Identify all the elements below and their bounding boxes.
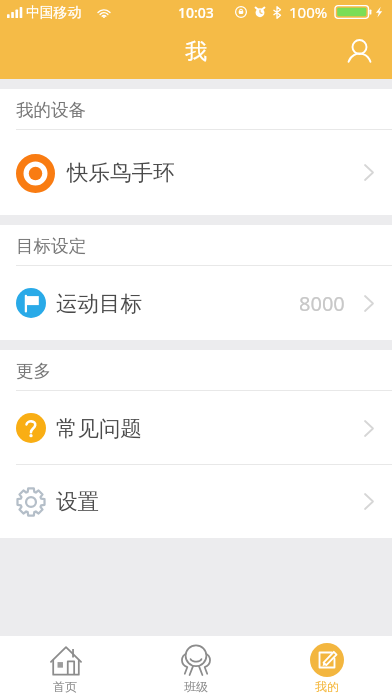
staticText: 我 bbox=[185, 38, 207, 66]
staticText: 目标设定 bbox=[16, 235, 86, 257]
staticText: 10:03 bbox=[178, 3, 214, 22]
staticText: 100% bbox=[289, 2, 328, 22]
button[interactable]: 设置 bbox=[0, 465, 392, 538]
button[interactable]: 首页 bbox=[0, 636, 130, 696]
staticText: 首页 bbox=[53, 679, 77, 694]
staticText: 快乐鸟手环 bbox=[67, 159, 175, 186]
staticText: 运动目标 bbox=[56, 290, 142, 317]
staticText: 班级 bbox=[184, 679, 208, 694]
button[interactable]: 快乐鸟手环 bbox=[0, 130, 392, 215]
staticText: 中国移动 bbox=[26, 4, 82, 21]
staticText: 我的 bbox=[315, 679, 339, 694]
button[interactable]: 班级 bbox=[130, 636, 261, 696]
staticText: 8000 bbox=[299, 290, 345, 317]
button[interactable]: 运动目标 bbox=[0, 266, 392, 340]
button[interactable]: Profile bbox=[340, 32, 380, 72]
staticText: 我的设备 bbox=[16, 99, 86, 121]
staticText: 常见问题 bbox=[56, 415, 142, 442]
button[interactable]: 我的 bbox=[261, 636, 392, 696]
staticText: 设置 bbox=[56, 488, 99, 515]
button[interactable]: 常见问题 bbox=[0, 391, 392, 465]
staticText: 更多 bbox=[16, 360, 51, 382]
